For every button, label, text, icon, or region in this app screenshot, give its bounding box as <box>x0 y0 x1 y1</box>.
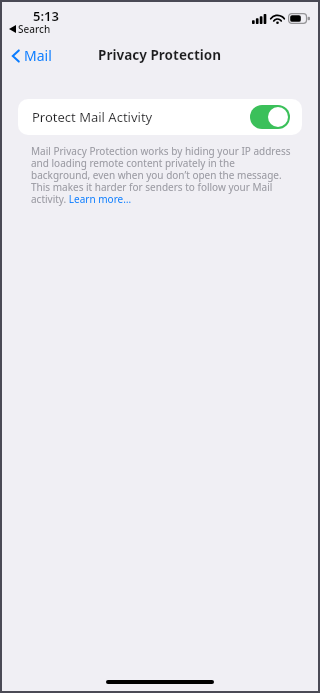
staticText: Search <box>18 22 51 36</box>
staticText: Mail Privacy Protection works by hiding … <box>31 144 292 206</box>
button[interactable]: Protect Mail Activity <box>18 99 302 135</box>
staticText: Mail <box>24 46 52 65</box>
button[interactable]: Search <box>8 22 52 36</box>
staticText: Privacy Protection <box>98 46 222 64</box>
staticText: Protect Mail Activity <box>32 108 153 126</box>
button[interactable]: Mail <box>2 42 60 69</box>
button[interactable]: Protect Mail Activity toggle, on <box>250 105 290 129</box>
staticText: 5:13 <box>33 7 59 25</box>
